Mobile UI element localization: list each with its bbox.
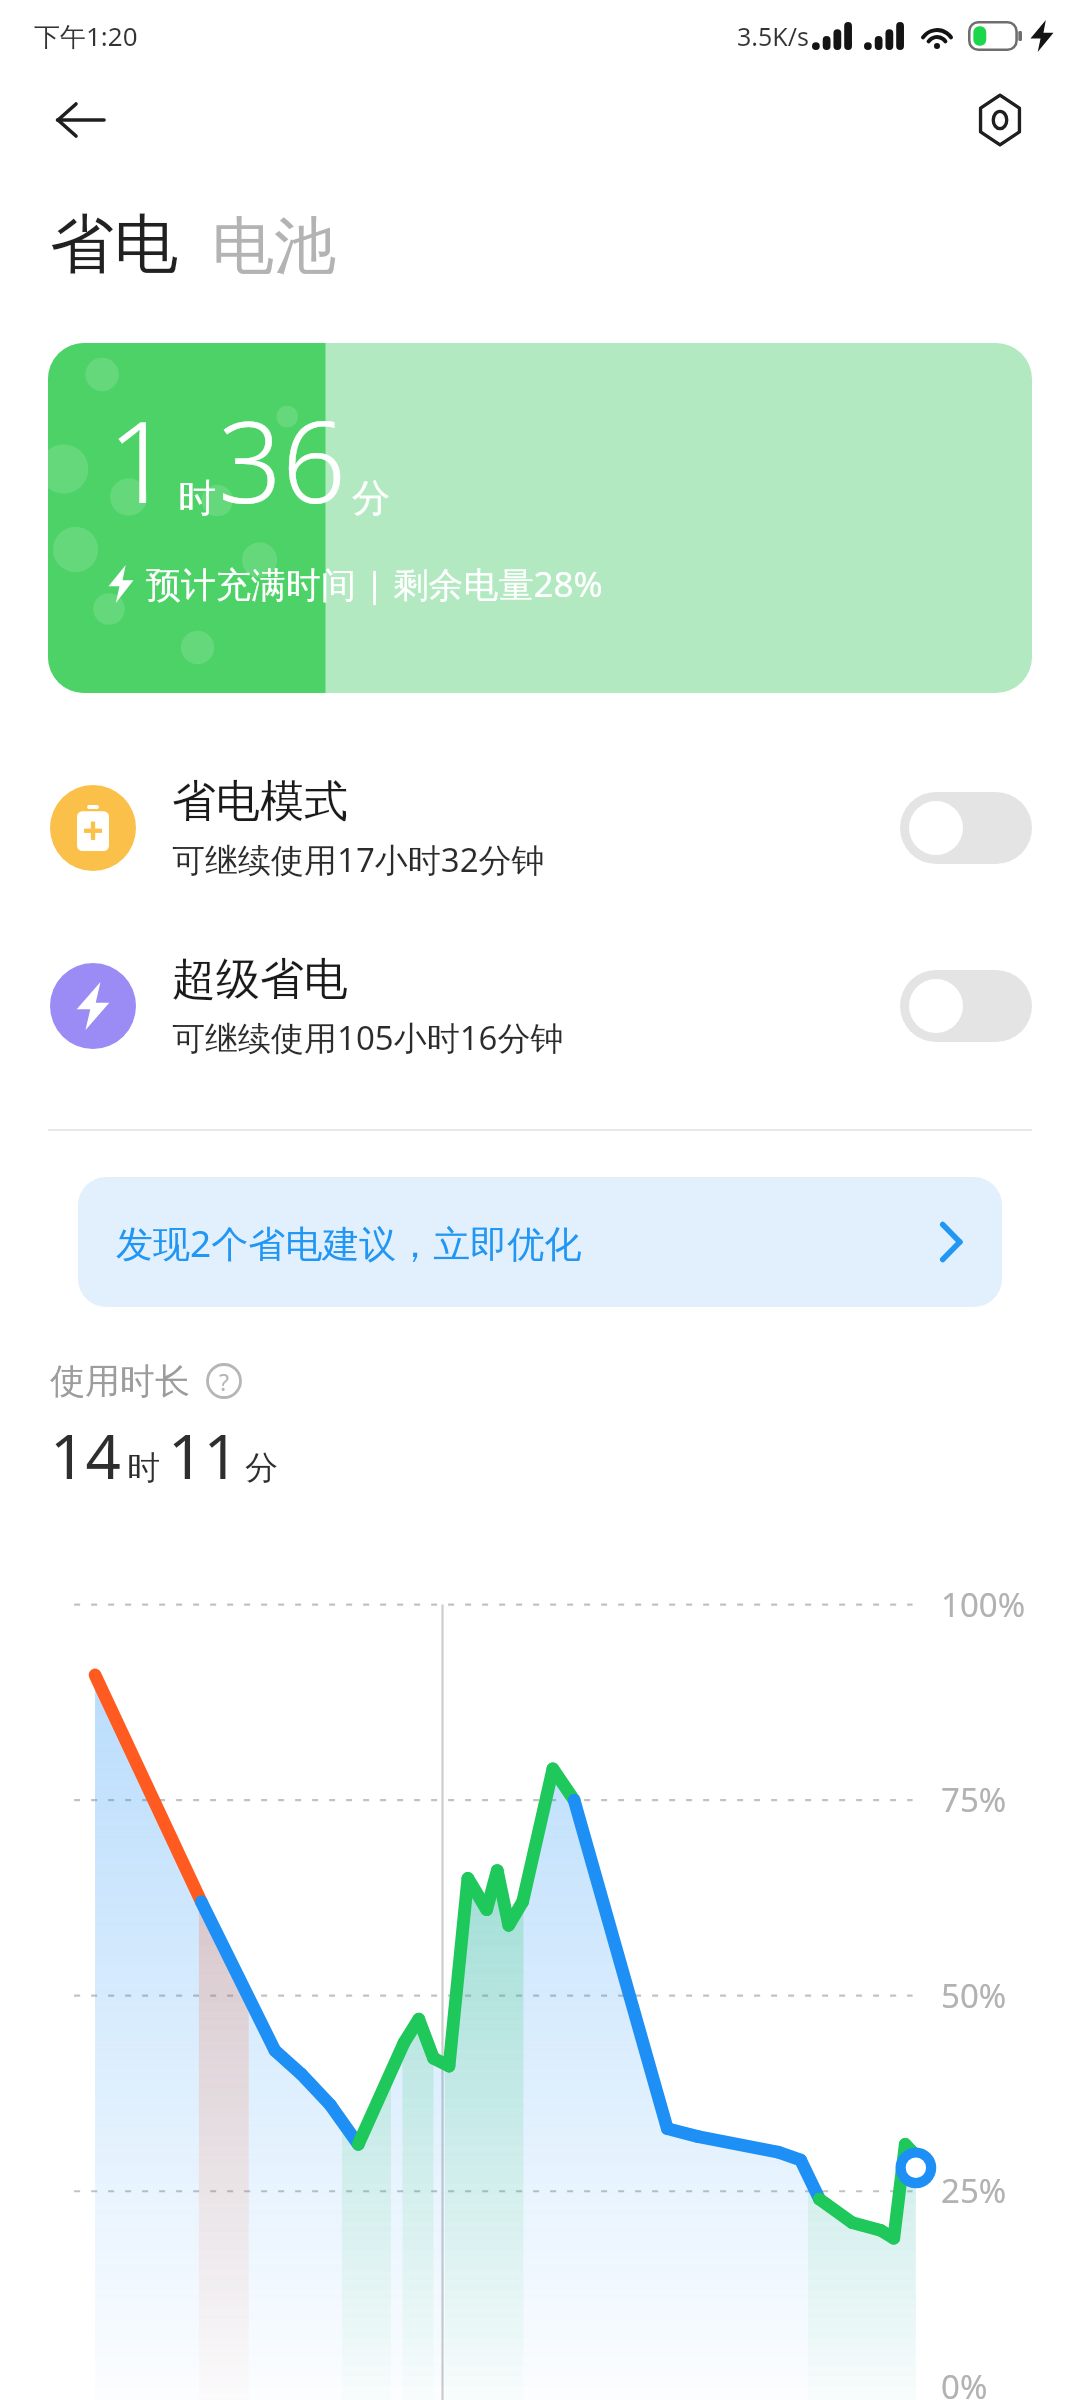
staticText: 时 <box>178 474 216 522</box>
staticText: 电池 <box>212 207 336 285</box>
staticText: 发现2个省电建议，立即优化 <box>116 1217 938 1268</box>
staticText: 25% <box>941 2168 1007 2213</box>
button[interactable]: Help <box>206 1363 242 1399</box>
button[interactable]: 省电 <box>50 204 178 285</box>
staticText: 预计充满时间 | 剩余电量28% <box>146 560 603 608</box>
staticText: 分 <box>245 1447 278 1489</box>
staticText: 14 <box>50 1413 121 1497</box>
staticText: 超级省电 <box>172 952 348 1007</box>
button[interactable]: 省电模式 <box>0 749 1080 907</box>
button[interactable]: 电池 <box>212 207 336 285</box>
staticText: 分 <box>352 474 390 522</box>
staticText: 0% <box>941 2364 988 2400</box>
staticText: 100% <box>941 1582 1026 1627</box>
staticText: 11 <box>168 1413 239 1497</box>
staticText: 3.5K/s <box>737 19 810 53</box>
staticText: 36 <box>218 383 346 536</box>
staticText: 省电 <box>50 204 178 285</box>
staticText: 可继续使用17小时32分钟 <box>172 837 545 882</box>
staticText: 1 <box>108 383 172 536</box>
staticText: 省电模式 <box>172 774 348 829</box>
button[interactable]: Settings <box>958 78 1042 162</box>
button[interactable]: 省电模式 <box>900 792 1032 864</box>
staticText: 时 <box>127 1447 160 1489</box>
staticText: ? <box>219 1366 229 1397</box>
button[interactable]: 超级省电 <box>0 927 1080 1085</box>
button[interactable]: 发现2个省电建议，立即优化 <box>78 1177 1002 1307</box>
button[interactable]: Back <box>38 78 122 162</box>
staticText: 50% <box>941 1973 1007 2018</box>
staticText: 75% <box>941 1777 1007 1822</box>
button[interactable]: 1 <box>48 343 1032 693</box>
staticText: 下午1:20 <box>34 18 138 54</box>
button[interactable]: 超级省电 <box>900 970 1032 1042</box>
staticText: 使用时长 <box>50 1359 190 1403</box>
staticText: 可继续使用105小时16分钟 <box>172 1015 564 1060</box>
